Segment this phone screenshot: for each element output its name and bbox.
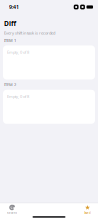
staticText: Saved [84, 211, 91, 215]
button[interactable]: Recent [4, 202, 20, 217]
staticText: Diff [4, 19, 16, 28]
staticText: Empty, 0 of 8 [7, 94, 29, 99]
button[interactable]: Saved [81, 202, 94, 217]
staticText: 9:41 [9, 3, 19, 11]
staticText: Empty, 0 of 8 [7, 49, 29, 55]
staticText: ITEM 2 [4, 82, 16, 87]
staticText: Every shift in task is recorded [4, 30, 55, 36]
staticText: ITEM 1 [4, 38, 16, 43]
staticText: Recent [7, 211, 17, 215]
